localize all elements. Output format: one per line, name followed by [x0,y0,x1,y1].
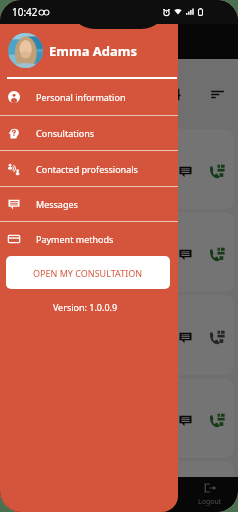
button[interactable] [4,378,234,458]
staticText: Personal information [36,91,126,103]
button[interactable] [4,295,234,375]
staticText: Messages [36,198,78,210]
button[interactable]: Consultations [0,116,178,150]
staticText: Logout [198,497,222,507]
button[interactable]: Sort [201,78,233,110]
button[interactable]: OPEN MY CONSULTATION [6,256,170,289]
staticText: Emma Adams [49,42,137,60]
button[interactable] [4,129,234,209]
button[interactable]: Logout [186,477,234,512]
staticText: Contacted professionals [36,163,138,175]
button[interactable] [4,461,234,477]
staticText: Consultations [36,127,95,139]
button[interactable]: Payment methods [0,222,178,256]
staticText: OPEN MY CONSULTATION [33,267,143,279]
button[interactable]: Messages [0,187,178,221]
staticText: Payment methods [36,233,114,245]
button[interactable] [4,212,234,292]
staticText: 10:42 [12,5,38,19]
button[interactable]: Contacted professionals [0,151,178,186]
button[interactable]: Personal information [0,79,178,115]
staticText: Version: 1.0.0.9 [0,301,170,313]
button[interactable]: Filter [158,78,190,110]
